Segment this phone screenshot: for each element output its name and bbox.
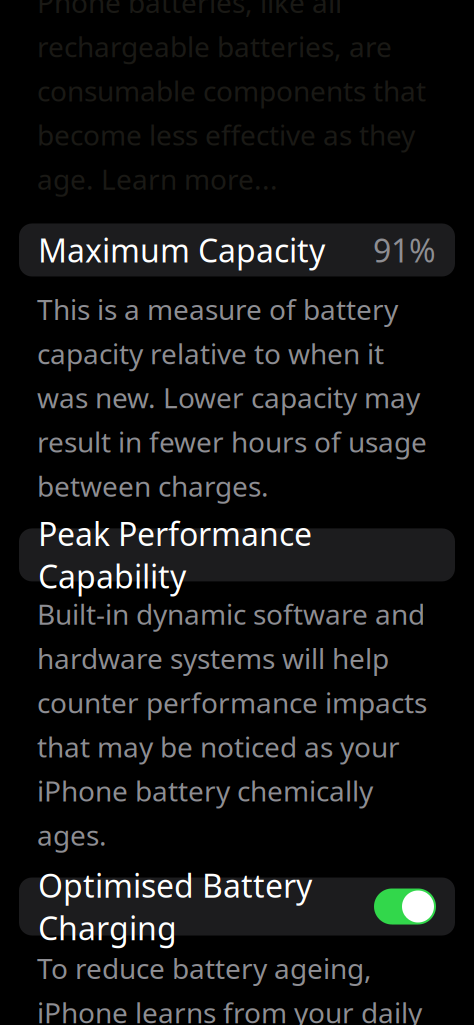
button[interactable]: Optimised Battery Charging — [19, 877, 455, 935]
staticText: Phone batteries, like all rechargeable b… — [37, 0, 426, 197]
staticText: Built-in dynamic software and hardware s… — [37, 595, 427, 853]
staticText: 91% — [373, 229, 436, 271]
staticText: To reduce battery ageing, iPhone learns … — [37, 949, 430, 1025]
staticText: Optimised Battery Charging — [38, 864, 312, 949]
button[interactable]: Maximum Capacity — [19, 223, 455, 276]
staticText: Maximum Capacity — [38, 229, 325, 271]
staticText: This is a measure of battery capacity re… — [37, 290, 427, 504]
staticText: Peak Performance Capability — [38, 512, 312, 597]
button[interactable]: Peak Performance Capability — [19, 528, 455, 581]
